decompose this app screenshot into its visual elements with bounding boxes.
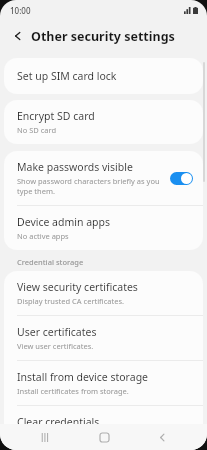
- staticText: Remove all certificates.: [17, 431, 98, 441]
- button[interactable]: Recent apps: [32, 424, 58, 450]
- button[interactable]: Encrypt SD card: [4, 100, 203, 144]
- staticText: Clear credentials: [17, 415, 100, 429]
- button[interactable]: Device admin apps: [4, 206, 203, 250]
- staticText: Credential storage: [17, 257, 84, 267]
- button[interactable]: Back: [149, 424, 175, 450]
- staticText: Install certificates from storage.: [17, 386, 129, 396]
- staticText: User certificates: [17, 325, 97, 339]
- button[interactable]: Make passwords visible toggle: [170, 172, 193, 185]
- staticText: Display trusted CA certificates.: [17, 296, 124, 306]
- staticText: Make passwords visible: [17, 160, 133, 174]
- button[interactable]: Set up SIM card lock: [4, 58, 203, 94]
- staticText: Set up SIM card lock: [17, 69, 117, 83]
- staticText: 10:00: [10, 5, 31, 16]
- button[interactable]: User certificates: [4, 316, 203, 360]
- staticText: No SD card: [17, 125, 57, 135]
- staticText: Encrypt SD card: [17, 109, 95, 123]
- staticText: No active apps: [17, 231, 69, 241]
- button[interactable]: Install from device storage: [4, 361, 203, 405]
- staticText: View user certificates.: [17, 341, 94, 351]
- button[interactable]: Make passwords visible: [4, 151, 203, 205]
- button[interactable]: Clear credentials: [4, 406, 203, 450]
- button[interactable]: Back: [8, 26, 28, 46]
- button[interactable]: View security certificates: [4, 271, 203, 315]
- staticText: Device admin apps: [17, 215, 111, 229]
- staticText: Install from device storage: [17, 370, 149, 384]
- button[interactable]: Home: [91, 424, 117, 450]
- staticText: View security certificates: [17, 280, 138, 294]
- staticText: Other security settings: [31, 28, 175, 45]
- staticText: Show password characters briefly as you …: [17, 176, 160, 196]
